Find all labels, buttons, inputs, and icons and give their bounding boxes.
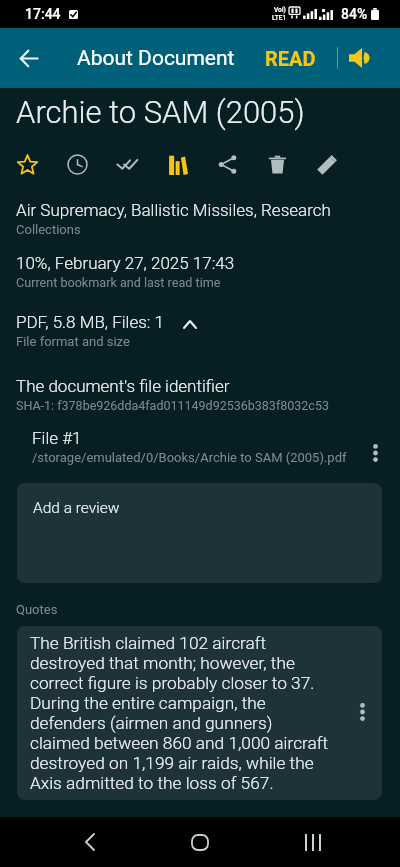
- staticText: Add a review: [33, 499, 120, 517]
- staticText: PDF, 5.8 MB, Files: 1: [16, 312, 164, 332]
- button[interactable]: READ: [255, 33, 326, 84]
- staticText: READ: [265, 47, 316, 70]
- button[interactable]: Back: [66, 818, 114, 866]
- button[interactable]: Quote options: [347, 698, 377, 728]
- staticText: The British claimed 102 aircraft destroy…: [30, 633, 331, 793]
- button[interactable]: Mark as read: [102, 144, 152, 184]
- button[interactable]: Home: [176, 818, 224, 866]
- button[interactable]: Read aloud: [338, 28, 380, 88]
- staticText: About Document: [77, 46, 235, 71]
- button[interactable]: Add a review: [17, 483, 382, 583]
- staticText: Archie to SAM (2005): [16, 94, 305, 130]
- button[interactable]: Back: [0, 28, 58, 88]
- staticText: File #1: [32, 428, 82, 448]
- button[interactable]: Share: [202, 144, 252, 184]
- staticText: Current bookmark and last read time: [16, 275, 221, 290]
- staticText: 84%: [341, 6, 368, 22]
- button[interactable]: The document's file identifier: [0, 376, 400, 413]
- staticText: Collections: [16, 222, 81, 237]
- button[interactable]: 10%, February 27, 2025 17:43: [0, 253, 400, 290]
- staticText: 10%, February 27, 2025 17:43: [16, 253, 235, 273]
- staticText: 17:44: [25, 6, 61, 22]
- staticText: LTE1: [272, 14, 287, 22]
- staticText: Quotes: [16, 602, 58, 617]
- staticText: The document's file identifier: [16, 376, 230, 396]
- button[interactable]: PDF, 5.8 MB, Files: 1: [0, 312, 400, 349]
- button[interactable]: Recent apps: [289, 818, 337, 866]
- button[interactable]: Collections: [152, 144, 202, 184]
- button[interactable]: File #1: [0, 428, 400, 465]
- staticText: VoI): [274, 6, 286, 14]
- button[interactable]: The British claimed 102 aircraft destroy…: [17, 626, 382, 800]
- staticText: Air Supremacy, Ballistic Missiles, Resea…: [16, 200, 331, 220]
- staticText: SHA-1: f378be926dda4fad011149d92536b383f…: [16, 398, 329, 413]
- button[interactable]: Delete: [252, 144, 302, 184]
- button[interactable]: File options: [358, 430, 392, 464]
- button[interactable]: Reading history: [52, 144, 102, 184]
- button[interactable]: Favorite: [2, 144, 52, 184]
- staticText: /storage/emulated/0/Books/Archie to SAM …: [32, 450, 347, 465]
- button[interactable]: Edit: [302, 144, 352, 184]
- button[interactable]: Air Supremacy, Ballistic Missiles, Resea…: [0, 200, 400, 237]
- staticText: File format and size: [16, 334, 130, 349]
